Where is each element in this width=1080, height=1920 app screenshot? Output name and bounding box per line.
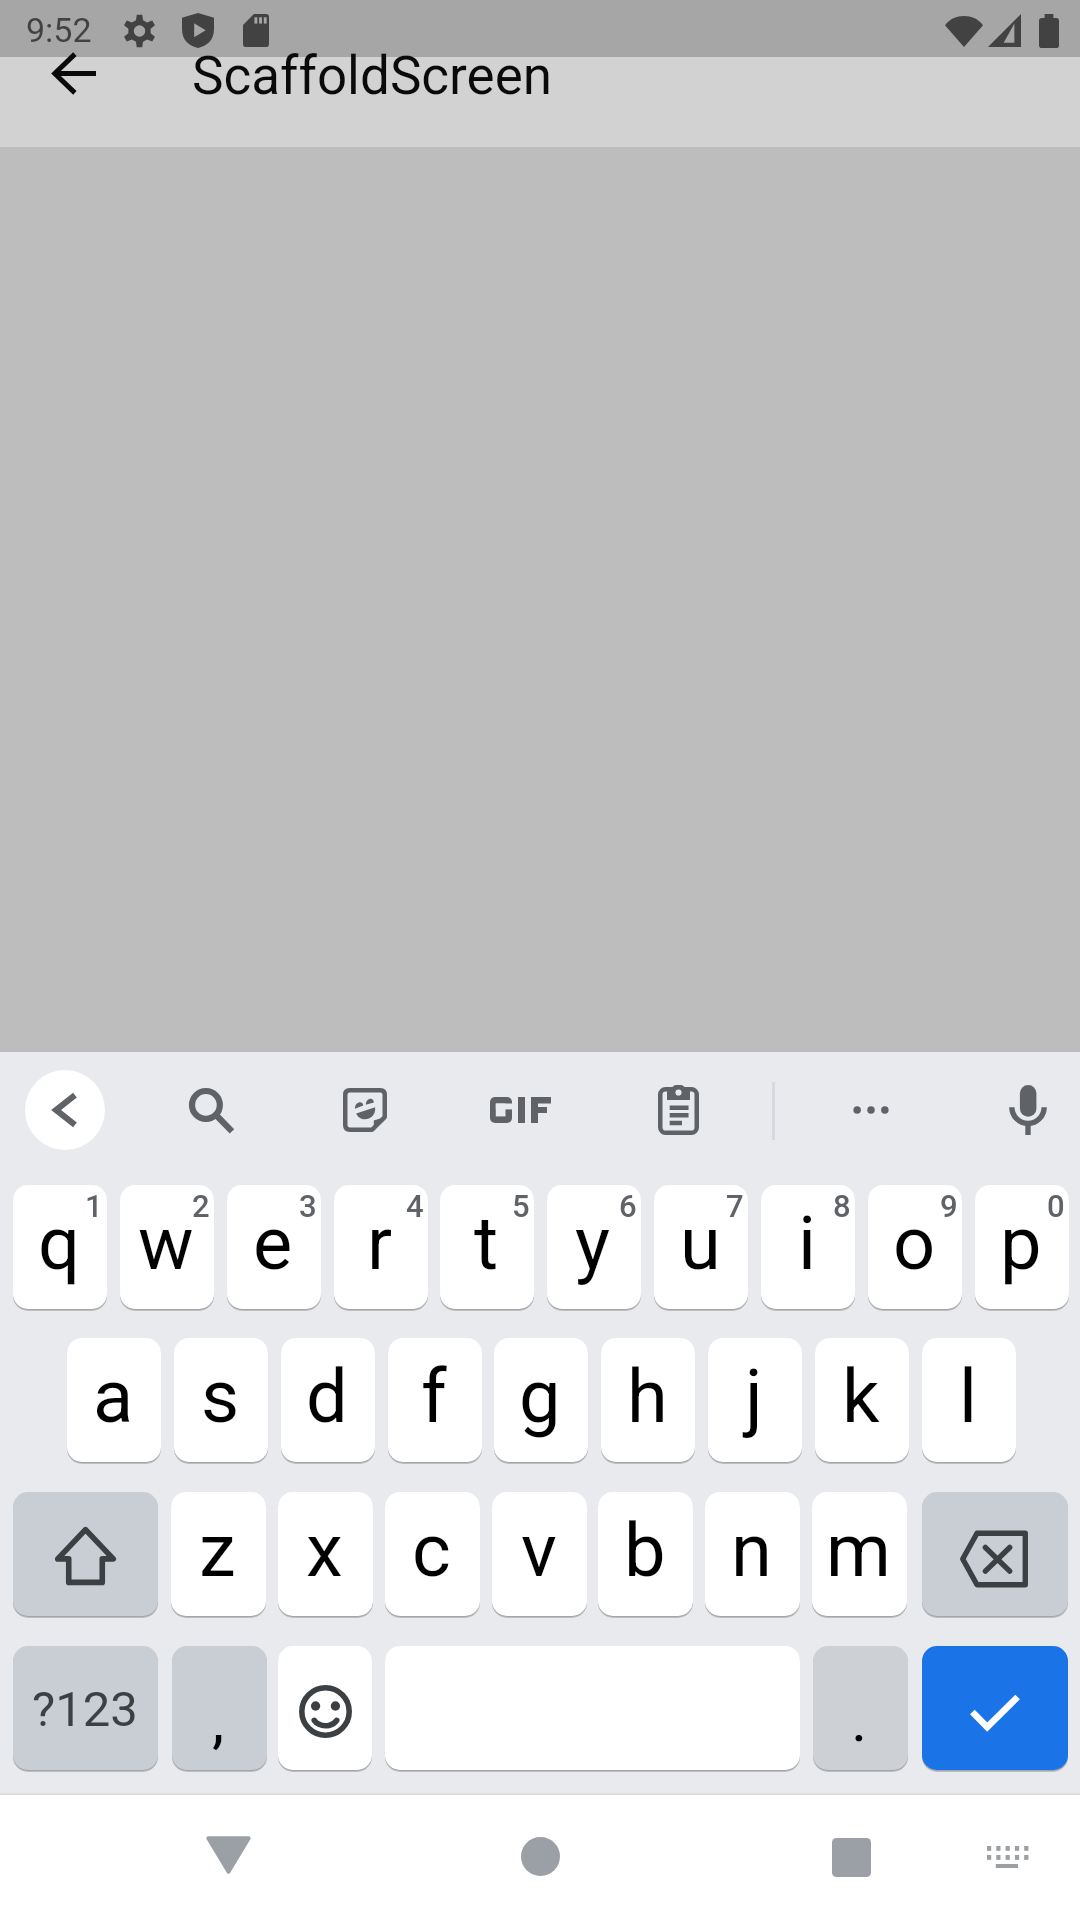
staticText: x xyxy=(306,1507,343,1594)
staticText: u xyxy=(680,1200,721,1287)
staticText: 2 xyxy=(192,1188,210,1224)
staticText: z xyxy=(199,1507,236,1594)
staticText: v xyxy=(521,1507,557,1594)
staticText: g xyxy=(519,1353,561,1440)
button[interactable]: z xyxy=(171,1492,266,1616)
button[interactable]: 1 xyxy=(13,1185,107,1309)
button[interactable]: a xyxy=(67,1338,161,1462)
button[interactable]: f xyxy=(388,1338,482,1462)
button[interactable]: Back xyxy=(29,29,118,118)
button[interactable]: GIF xyxy=(484,1074,556,1146)
button[interactable]: Search xyxy=(175,1074,247,1146)
staticText: 7 xyxy=(726,1188,744,1224)
staticText: c xyxy=(412,1507,451,1594)
staticText: n xyxy=(731,1507,772,1594)
staticText: j xyxy=(745,1353,763,1440)
staticText: d xyxy=(306,1353,348,1440)
button[interactable]: , xyxy=(172,1646,267,1770)
button[interactable]: g xyxy=(494,1338,588,1462)
staticText: l xyxy=(959,1353,977,1440)
button[interactable]: j xyxy=(708,1338,802,1462)
button[interactable]: n xyxy=(705,1492,800,1616)
staticText: s xyxy=(201,1353,240,1440)
button[interactable]: 4 xyxy=(334,1185,428,1309)
button[interactable]: x xyxy=(278,1492,373,1616)
button[interactable]: 8 xyxy=(761,1185,855,1309)
button[interactable]: Backspace xyxy=(922,1492,1068,1616)
button[interactable]: Voice input xyxy=(992,1074,1064,1146)
button[interactable]: Recents xyxy=(801,1806,901,1906)
button[interactable]: Shift xyxy=(13,1492,158,1616)
staticText: , xyxy=(212,1684,225,1757)
button[interactable]: ?123 xyxy=(13,1646,158,1770)
staticText: 6 xyxy=(619,1188,637,1224)
button[interactable]: Emoji xyxy=(278,1646,372,1770)
button[interactable]: k xyxy=(815,1338,909,1462)
staticText: . xyxy=(851,1683,868,1756)
staticText: ScaffoldScreen xyxy=(192,45,553,107)
staticText: r xyxy=(367,1200,393,1287)
staticText: p xyxy=(1000,1200,1042,1287)
staticText: 3 xyxy=(299,1188,317,1224)
button[interactable]: 0 xyxy=(975,1185,1069,1309)
staticText: k xyxy=(842,1353,880,1440)
button[interactable]: d xyxy=(281,1338,375,1462)
button[interactable]: Enter xyxy=(922,1646,1068,1770)
button[interactable]: . xyxy=(813,1646,908,1770)
staticText: 8 xyxy=(833,1188,851,1224)
button[interactable]: 9 xyxy=(868,1185,962,1309)
staticText: 1 xyxy=(85,1188,103,1224)
button[interactable]: Switch keyboard xyxy=(957,1806,1057,1906)
button[interactable]: v xyxy=(492,1492,587,1616)
button[interactable]: 6 xyxy=(547,1185,641,1309)
button[interactable]: l xyxy=(922,1338,1016,1462)
staticText: a xyxy=(93,1353,134,1440)
button[interactable]: b xyxy=(598,1492,693,1616)
staticText: h xyxy=(627,1353,668,1440)
button[interactable]: More options xyxy=(835,1074,907,1146)
button[interactable]: 7 xyxy=(654,1185,748,1309)
staticText: m xyxy=(826,1507,891,1594)
button[interactable]: 2 xyxy=(120,1185,214,1309)
staticText: o xyxy=(893,1200,936,1287)
button[interactable]: c xyxy=(385,1492,480,1616)
staticText: 5 xyxy=(512,1188,530,1224)
staticText: f xyxy=(421,1353,447,1440)
staticText: 9 xyxy=(940,1188,958,1224)
staticText: e xyxy=(253,1200,293,1287)
staticText: q xyxy=(38,1200,81,1287)
staticText: ?123 xyxy=(32,1681,138,1738)
staticText: w xyxy=(138,1200,194,1287)
button[interactable]: Back xyxy=(178,1806,278,1906)
button[interactable]: s xyxy=(174,1338,268,1462)
staticText: i xyxy=(798,1200,816,1287)
button[interactable]: m xyxy=(812,1492,907,1616)
button[interactable]: h xyxy=(601,1338,695,1462)
button[interactable]: Show toolbar xyxy=(25,1070,105,1150)
staticText: 0 xyxy=(1047,1188,1065,1224)
button[interactable]: Home xyxy=(490,1806,590,1906)
button[interactable]: Clipboard xyxy=(642,1074,714,1146)
staticText: y xyxy=(575,1200,611,1287)
staticText: 9:52 xyxy=(26,10,92,50)
button[interactable]: 5 xyxy=(440,1185,534,1309)
staticText: t xyxy=(474,1200,499,1287)
staticText: 4 xyxy=(406,1188,424,1224)
staticText: b xyxy=(624,1507,666,1594)
button[interactable]: 3 xyxy=(227,1185,321,1309)
button[interactable]: Stickers xyxy=(329,1074,401,1146)
